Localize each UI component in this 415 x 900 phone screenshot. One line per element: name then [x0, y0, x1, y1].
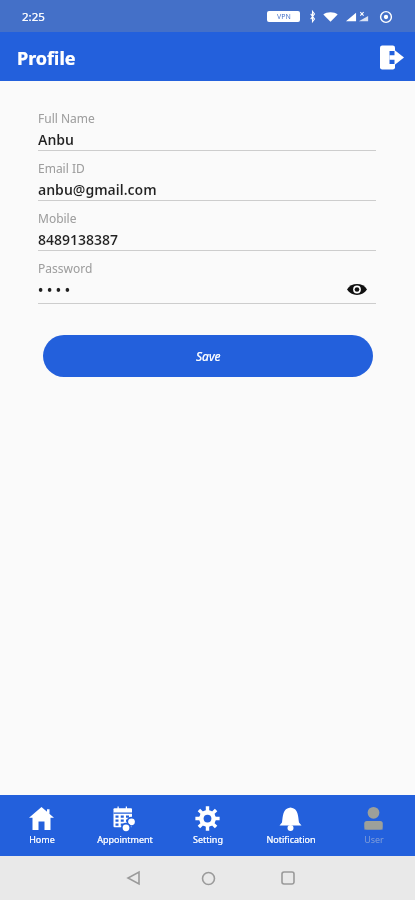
- button[interactable]: Show password: [346, 279, 368, 299]
- button[interactable]: Home: [191, 861, 225, 895]
- staticText: User: [364, 833, 384, 845]
- button[interactable]: Back: [116, 861, 150, 895]
- button[interactable]: Email ID: [38, 151, 376, 201]
- button[interactable]: Notification: [249, 795, 332, 856]
- button[interactable]: Home: [0, 795, 83, 856]
- staticText: 8489138387: [38, 230, 376, 249]
- staticText: Save: [196, 348, 221, 364]
- staticText: anbu@gmail.com: [38, 180, 376, 199]
- staticText: Full Name: [38, 110, 95, 126]
- staticText: Appointment: [97, 833, 153, 845]
- staticText: Home: [29, 833, 55, 845]
- button[interactable]: Save: [43, 335, 373, 377]
- staticText: Profile: [17, 46, 76, 71]
- button[interactable]: Setting: [166, 795, 249, 856]
- staticText: Mobile: [38, 210, 77, 226]
- button[interactable]: Recents: [271, 861, 305, 895]
- staticText: Anbu: [38, 130, 376, 149]
- button[interactable]: User: [332, 795, 415, 856]
- button[interactable]: Mobile: [38, 201, 376, 251]
- button[interactable]: Full Name: [38, 101, 376, 151]
- staticText: Setting: [193, 833, 223, 845]
- button[interactable]: Password: [38, 251, 376, 304]
- staticText: Notification: [266, 833, 316, 845]
- button[interactable]: Appointment: [83, 795, 166, 856]
- staticText: • • • •: [38, 280, 346, 299]
- staticText: 2:25: [22, 9, 45, 25]
- button[interactable]: Logout: [371, 37, 411, 77]
- staticText: Email ID: [38, 160, 85, 176]
- staticText: VPN: [277, 12, 291, 22]
- staticText: Password: [38, 260, 93, 276]
